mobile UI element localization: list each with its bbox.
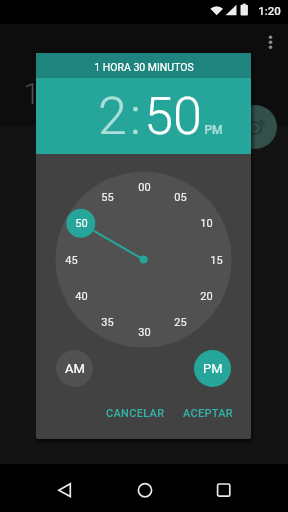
button[interactable] (204, 469, 244, 509)
staticText: 1 (23, 77, 40, 111)
staticText: 50 (144, 86, 202, 147)
button[interactable] (125, 469, 165, 509)
staticText: 1:20 (258, 4, 281, 17)
staticText: 20 (200, 290, 213, 303)
staticText: 30 (138, 326, 151, 339)
staticText: 2 (98, 86, 127, 147)
staticText: 50 (75, 217, 88, 230)
staticText: 40 (75, 290, 88, 303)
button[interactable] (44, 469, 84, 509)
staticText: 25 (174, 316, 187, 329)
button[interactable] (233, 105, 277, 149)
button[interactable]: AM (56, 350, 93, 387)
staticText: PM (203, 361, 223, 376)
staticText: 55 (101, 191, 114, 204)
button[interactable]: CANCELAR (100, 401, 170, 425)
staticText: 05 (174, 191, 187, 204)
staticText: CANCELAR (106, 407, 165, 420)
staticText: 00 (138, 181, 151, 194)
button[interactable]: ACEPTAR (173, 401, 243, 425)
staticText: 35 (101, 316, 114, 329)
staticText: 15 (210, 254, 223, 267)
staticText: AM (65, 361, 85, 376)
staticText: ACEPTAR (183, 407, 233, 420)
button[interactable]: PM (194, 350, 231, 387)
staticText: 45 (65, 254, 78, 267)
staticText: 10 (200, 217, 213, 230)
staticText: : (130, 86, 141, 147)
staticText: 1 HORA 30 MINUTOS (94, 61, 194, 73)
staticText: PM (204, 123, 223, 137)
